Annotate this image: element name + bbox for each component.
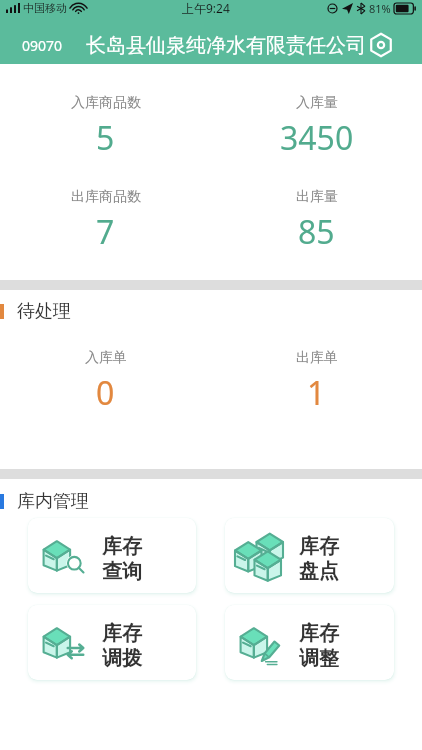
- staticText: 0: [96, 371, 115, 415]
- staticText: 入库单: [85, 349, 127, 367]
- staticText: 盘点: [299, 559, 339, 584]
- button[interactable]: 出库单: [211, 349, 422, 415]
- button[interactable]: 库存: [28, 605, 196, 680]
- staticText: 中国移动: [23, 1, 67, 15]
- staticText: 入库量: [296, 94, 338, 112]
- staticText: 81%: [369, 1, 391, 16]
- staticText: 出库量: [296, 188, 338, 206]
- staticText: 85: [298, 210, 335, 254]
- staticText: 上午9:24: [182, 0, 230, 16]
- staticText: 1: [307, 371, 326, 415]
- staticText: 入库商品数: [71, 94, 141, 112]
- staticText: 库存: [299, 621, 339, 646]
- staticText: 3450: [280, 116, 354, 160]
- staticText: 出库单: [296, 349, 338, 367]
- button[interactable]: 库存: [28, 518, 196, 593]
- button[interactable]: Settings: [366, 30, 396, 60]
- staticText: 库存: [299, 534, 339, 559]
- button[interactable]: 库存: [225, 605, 394, 680]
- button[interactable]: 入库商品数: [0, 94, 211, 160]
- staticText: 7: [96, 210, 115, 254]
- staticText: 长岛县仙泉纯净水有限责任公司: [86, 33, 366, 58]
- staticText: 库存: [102, 621, 142, 646]
- button[interactable]: 出库商品数: [0, 188, 211, 254]
- staticText: 库存: [102, 534, 142, 559]
- button[interactable]: 库存: [225, 518, 394, 593]
- staticText: 09070: [22, 36, 63, 55]
- staticText: 出库商品数: [71, 188, 141, 206]
- staticText: 5: [96, 116, 115, 160]
- staticText: 待处理: [17, 300, 71, 322]
- button[interactable]: 出库量: [211, 188, 422, 254]
- button[interactable]: 入库量: [211, 94, 422, 160]
- staticText: 查询: [102, 559, 142, 584]
- staticText: 调拨: [102, 646, 142, 671]
- button[interactable]: 入库单: [0, 349, 211, 415]
- staticText: 库内管理: [17, 490, 89, 512]
- staticText: 调整: [299, 646, 339, 671]
